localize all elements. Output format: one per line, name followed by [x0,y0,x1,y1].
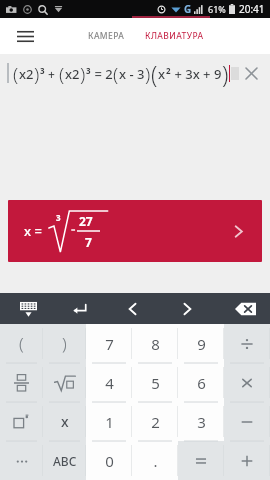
button[interactable]: Square root [43,363,86,402]
staticText: 3 [40,65,45,76]
staticText: ( [113,61,119,87]
staticText: x2 [65,65,80,83]
button[interactable]: 6 [178,363,224,402]
staticText: 2 [166,65,171,76]
button[interactable]: x [43,402,86,441]
button[interactable]: Enter [65,295,93,323]
staticText: 3 [86,65,91,76]
button[interactable]: Hide keyboard [14,295,42,323]
button[interactable]: Divide [224,324,270,363]
staticText: 27 [79,213,93,229]
button[interactable]: КАМЕРА [82,24,131,48]
button[interactable]: Clear [238,60,264,86]
staticText: 8 [151,334,160,354]
button[interactable]: ABC [43,441,86,480]
button[interactable]: 7 [86,324,132,363]
button[interactable]: Menu [8,19,42,53]
other: Next step [226,219,250,243]
staticText: ( [59,61,65,87]
staticText: 7 [105,334,114,354]
staticText: ) [34,61,40,87]
staticText: G [184,2,192,16]
staticText: 5 [151,373,160,393]
staticText: ) [80,61,86,87]
button[interactable]: 2 [132,402,178,441]
button[interactable]: 5 [132,363,178,402]
staticText: ( [19,332,24,355]
staticText: . [153,451,158,471]
staticText: ( [151,58,158,89]
staticText: + 3x + 9 [171,65,222,83]
staticText: x2 [19,65,34,83]
button[interactable]: Minus [224,402,270,441]
button[interactable]: КЛАВИАТУРА [139,24,210,48]
staticText: x [61,412,69,431]
staticText: ) [222,58,229,89]
button[interactable]: Left [119,295,147,323]
staticText: ) [62,332,67,355]
staticText: ) [145,61,151,87]
staticText: 6 [197,373,206,393]
staticText: 3 [56,212,61,223]
staticText: 3 [197,412,206,432]
staticText: x - 3 [119,65,145,83]
button[interactable]: ( [0,324,43,363]
staticText: 20:41 [239,2,265,16]
button[interactable]: 0 [86,441,132,480]
staticText: x [158,65,166,83]
staticText: ( [13,61,19,87]
button[interactable]: ) [43,324,86,363]
staticText: x = [24,222,42,240]
button[interactable]: Backspace [230,294,260,324]
staticText: 0 [105,451,114,471]
staticText: 7 [85,234,92,250]
button[interactable]: 1 [86,402,132,441]
button[interactable]: Equals [178,441,224,480]
button[interactable]: Square [0,402,43,441]
button[interactable]: Fraction [0,363,43,402]
staticText: 2 [151,412,160,432]
staticText: = 2 [91,65,113,83]
button[interactable]: More [0,441,43,480]
staticText: ABC [53,453,77,469]
staticText: КАМЕРА [88,30,125,42]
button[interactable]: 8 [132,324,178,363]
button[interactable]: x = [8,200,262,262]
button[interactable]: 3 [178,402,224,441]
staticText: + [45,66,59,82]
staticText: 61% [208,3,226,15]
button[interactable]: 9 [178,324,224,363]
staticText: 4 [105,373,114,393]
button[interactable]: Multiply [224,363,270,402]
button[interactable]: Right [173,295,201,323]
button[interactable]: . [132,441,178,480]
button[interactable]: Plus [224,441,270,480]
staticText: КЛАВИАТУРА [145,30,204,42]
staticText: 9 [197,334,206,354]
staticText: 1 [105,412,114,432]
button[interactable]: 4 [86,363,132,402]
